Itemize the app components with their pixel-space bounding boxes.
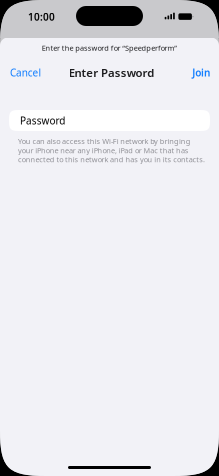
staticText: You can also access this Wi-Fi network b… xyxy=(18,136,205,164)
staticText: Password xyxy=(20,114,65,127)
button[interactable]: Password xyxy=(9,110,210,131)
button[interactable]: Cancel xyxy=(0,61,54,83)
staticText: Enter Password xyxy=(69,65,154,80)
staticText: Enter the password for “Speedperform” xyxy=(42,43,177,53)
staticText: Join xyxy=(192,66,210,79)
staticText: Cancel xyxy=(10,66,41,79)
staticText: 10:00 xyxy=(28,10,55,24)
button[interactable]: Join xyxy=(174,61,219,83)
